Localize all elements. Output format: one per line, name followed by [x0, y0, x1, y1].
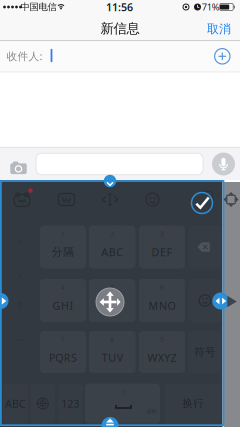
- staticText: MNO: [149, 298, 175, 313]
- button[interactable]: 4: [40, 279, 86, 322]
- button[interactable]: 向下调整键盘: [104, 175, 116, 187]
- button[interactable]: 向上调整键盘: [101, 417, 118, 427]
- staticText: 6: [160, 283, 164, 292]
- button[interactable]: 切换输入法: [31, 383, 55, 423]
- button[interactable]: 表情: [146, 193, 159, 206]
- button[interactable]: 6: [139, 279, 185, 322]
- button[interactable]: ABC: [3, 383, 28, 423]
- staticText: TUV: [102, 350, 123, 365]
- staticText: 5: [110, 283, 114, 292]
- button[interactable]: 5: [89, 279, 135, 322]
- button[interactable]: 语音输入: [212, 152, 235, 175]
- button[interactable]: 皮肤: [58, 193, 74, 205]
- button[interactable]: 表情包: [13, 192, 30, 207]
- button[interactable]: 完成: [191, 192, 212, 213]
- staticText: 4: [61, 283, 65, 292]
- staticText: 8: [110, 335, 114, 344]
- button[interactable]: 移动键盘: [96, 288, 124, 316]
- staticText: 9: [160, 335, 164, 344]
- staticText: 收件人:: [6, 49, 42, 63]
- button[interactable]: 7: [40, 331, 86, 373]
- staticText: GHI: [53, 298, 73, 313]
- button[interactable]: 9: [139, 331, 185, 373]
- staticText: 11:56: [106, 0, 133, 14]
- button[interactable]: 123: [58, 383, 82, 423]
- staticText: 2: [110, 230, 114, 238]
- staticText: ABC: [5, 396, 26, 411]
- button[interactable]: 3: [139, 225, 185, 268]
- button[interactable]: 调整键盘宽度: [212, 292, 229, 309]
- staticText: 符号: [194, 345, 216, 358]
- button[interactable]: 光标: [102, 192, 118, 207]
- staticText: PQRS: [49, 350, 77, 365]
- staticText: 搜狗: [146, 408, 156, 415]
- button[interactable]: 2: [89, 225, 135, 268]
- button[interactable]: 空格: [85, 383, 160, 423]
- button[interactable]: 符号: [188, 331, 221, 373]
- staticText: 3: [160, 230, 164, 238]
- button[interactable]: 照片: [9, 160, 27, 174]
- staticText: ABC: [101, 245, 123, 259]
- button[interactable]: 删除: [188, 225, 221, 268]
- staticText: DEF: [152, 245, 172, 259]
- staticText: 分隔: [52, 245, 74, 258]
- staticText: 新信息: [100, 20, 139, 37]
- button[interactable]: 8: [89, 331, 135, 373]
- button[interactable]: 调整键盘左边缘: [0, 293, 8, 309]
- button[interactable]: 添加联系人: [215, 49, 230, 64]
- staticText: 71%: [202, 1, 220, 13]
- button[interactable]: 取消: [202, 19, 236, 39]
- staticText: 123: [61, 396, 79, 411]
- button[interactable]: 1: [40, 225, 86, 268]
- staticText: 换行: [182, 397, 204, 410]
- staticText: 0: [122, 389, 125, 396]
- staticText: 中国电信: [20, 1, 56, 13]
- button[interactable]: 表情: [188, 279, 221, 322]
- staticText: 取消: [207, 22, 231, 36]
- staticText: WXYZ: [147, 350, 177, 365]
- staticText: 7: [61, 335, 65, 344]
